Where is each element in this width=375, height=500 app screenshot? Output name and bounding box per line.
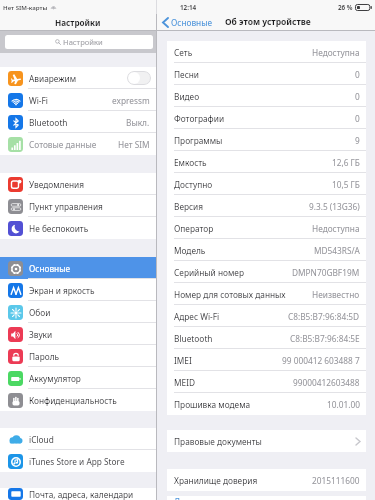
staticText: Недоступна [312,47,360,58]
button[interactable]: Диагностика и использование [167,496,366,500]
button[interactable]: Экран и яркость [0,279,156,301]
staticText: Авиарежим [29,73,77,84]
staticText: 0 [355,113,360,124]
staticText: Серийный номер [174,267,244,278]
staticText: Песни [174,69,199,80]
staticText: 99 000412 603488 7 [282,355,360,366]
staticText: Версия [174,201,204,212]
button[interactable]: Адрес Wi-Fi [167,305,366,327]
staticText: 0 [355,91,360,102]
staticText: Основные [29,263,71,274]
staticText: expressm [112,95,150,106]
staticText: Пароль [29,351,60,362]
button[interactable]: Емкость [167,151,366,173]
staticText: Wi-Fi [29,95,48,106]
staticText: Пункт управления [29,201,103,212]
button[interactable]: Серийный номер [167,261,366,283]
button[interactable]: Авиарежим [0,67,156,89]
staticText: 12,6 ГБ [332,157,360,168]
staticText: 26 % [338,3,353,12]
button[interactable]: iCloud [0,428,156,450]
button[interactable]: Песни [167,63,366,85]
staticText: iTunes Store и App Store [29,456,125,467]
staticText: MEID [174,377,196,388]
staticText: 12:14 [180,3,197,12]
button[interactable]: Bluetooth [0,111,156,133]
button[interactable]: Хранилище доверия [167,469,366,491]
button[interactable]: Сеть [167,41,366,63]
button[interactable]: IMEI [167,349,366,371]
button[interactable]: Фотографии [167,107,366,129]
staticText: Емкость [174,157,207,168]
button[interactable]: Доступно [167,173,366,195]
button[interactable]: Версия [167,195,366,217]
staticText: Настройки [55,17,101,28]
staticText: Нет SIM [118,139,150,150]
staticText: Не беспокоить [29,223,89,234]
staticText: Программы [174,135,223,146]
staticText: 2015111600 [312,475,360,486]
button[interactable]: Обои [0,301,156,323]
button[interactable]: Настройки [5,35,153,49]
button[interactable]: Пункт управления [0,195,156,217]
staticText: Уведомления [29,179,85,190]
staticText: Звуки [29,329,53,340]
staticText: Модель [174,245,206,256]
staticText: Настройки [63,37,103,47]
staticText: Диагностика и использование [174,496,297,500]
staticText: iCloud [29,434,54,445]
staticText: Обои [29,307,51,318]
button[interactable]: Пароль [0,345,156,367]
staticText: Недоступна [312,223,360,234]
button[interactable]: Программы [167,129,366,151]
staticText: Номер для сотовых данных [174,289,286,300]
staticText: C8:B5:B7:96:84:5E [290,333,360,344]
staticText: Сотовые данные [29,139,97,150]
button[interactable]: Авиарежим [127,71,151,85]
staticText: IMEI [174,355,192,366]
staticText: Фотографии [174,113,225,124]
staticText: Об этом устройстве [225,16,311,28]
button[interactable]: Конфиденциальность [0,389,156,411]
staticText: C8:B5:B7:96:84:5D [288,311,360,322]
button[interactable]: Не беспокоить [0,217,156,239]
button[interactable]: Уведомления [0,173,156,195]
button[interactable]: Назад: Основные [157,17,216,28]
button[interactable]: Bluetooth [167,327,366,349]
staticText: Неизвестно [312,289,360,300]
button[interactable]: iTunes Store и App Store [0,450,156,472]
button[interactable]: Видео [167,85,366,107]
button[interactable]: Номер для сотовых данных [167,283,366,305]
button[interactable]: Правовые документы [167,430,366,452]
button[interactable]: Почта, адреса, календари [0,488,156,500]
staticText: DMPN70GBF19M [292,267,360,278]
button[interactable]: Модель [167,239,366,261]
button[interactable]: Звуки [0,323,156,345]
staticText: Правовые документы [174,436,262,447]
staticText: Выкл. [126,117,150,128]
staticText: Bluetooth [174,333,213,344]
button[interactable]: MEID [167,371,366,393]
staticText: Конфиденциальность [29,395,117,406]
button[interactable]: Оператор [167,217,366,239]
staticText: Почта, адреса, календари [29,489,134,500]
button[interactable]: Сотовые данные [0,133,156,155]
staticText: 10.01.00 [327,399,360,410]
staticText: 9.3.5 (13G36) [309,201,360,212]
staticText: 99000412603488 [293,377,360,388]
staticText: Экран и яркость [29,285,95,296]
staticText: 9 [355,135,360,146]
staticText: Сеть [174,47,193,58]
staticText: Адрес Wi-Fi [174,311,220,322]
button[interactable]: Аккумулятор [0,367,156,389]
staticText: Оператор [174,223,214,234]
button[interactable]: Основные [0,257,156,279]
staticText: 0 [355,69,360,80]
button[interactable]: Прошивка модема [167,393,366,415]
staticText: Bluetooth [29,117,68,128]
staticText: Аккумулятор [29,373,81,384]
staticText: Хранилище доверия [174,475,258,486]
staticText: Основные [171,17,213,28]
button[interactable]: Wi-Fi [0,89,156,111]
staticText: Видео [174,91,200,102]
